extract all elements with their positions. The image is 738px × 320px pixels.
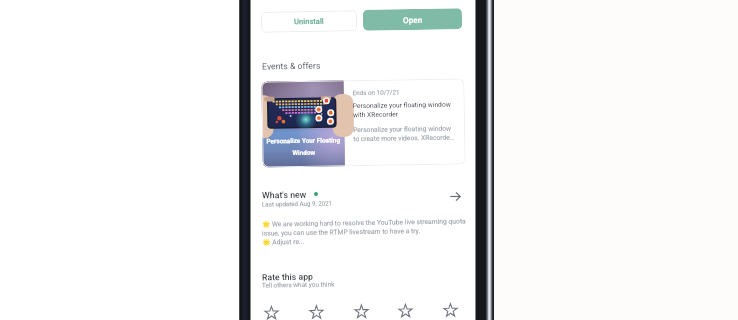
- button[interactable]: Rate 4 stars: [398, 303, 413, 318]
- staticText: Personalize your floating window to crea…: [353, 125, 455, 143]
- staticText: Personalize Your Floating: [266, 136, 340, 145]
- staticText: Personalize your floating window with XR…: [353, 101, 451, 119]
- staticText: Tell others what you think: [262, 280, 335, 289]
- staticText: Uninstall: [294, 17, 324, 26]
- staticText: Open: [403, 15, 423, 25]
- staticText: Last updated Aug 9, 2021: [262, 199, 333, 208]
- staticText: Events & offers: [262, 60, 321, 71]
- button[interactable]: Personalize Your Floating: [261, 78, 466, 168]
- button[interactable]: Rate this app: [262, 272, 313, 282]
- button[interactable]: Rate 3 stars: [354, 304, 369, 319]
- button[interactable]: Uninstall: [261, 10, 357, 33]
- staticText: Window: [292, 149, 315, 157]
- button[interactable]: Rate 5 stars: [443, 302, 458, 318]
- button[interactable]: Rate 1 stars: [264, 305, 279, 320]
- button[interactable]: See more: [450, 191, 461, 202]
- staticText: Ends on 10/7/21: [352, 88, 400, 96]
- button[interactable]: Rate 2 stars: [309, 305, 324, 320]
- button[interactable]: What's new: [262, 190, 307, 200]
- button[interactable]: Open: [363, 8, 462, 31]
- staticText: 🌟 We are working hard to resolve the You…: [262, 217, 467, 246]
